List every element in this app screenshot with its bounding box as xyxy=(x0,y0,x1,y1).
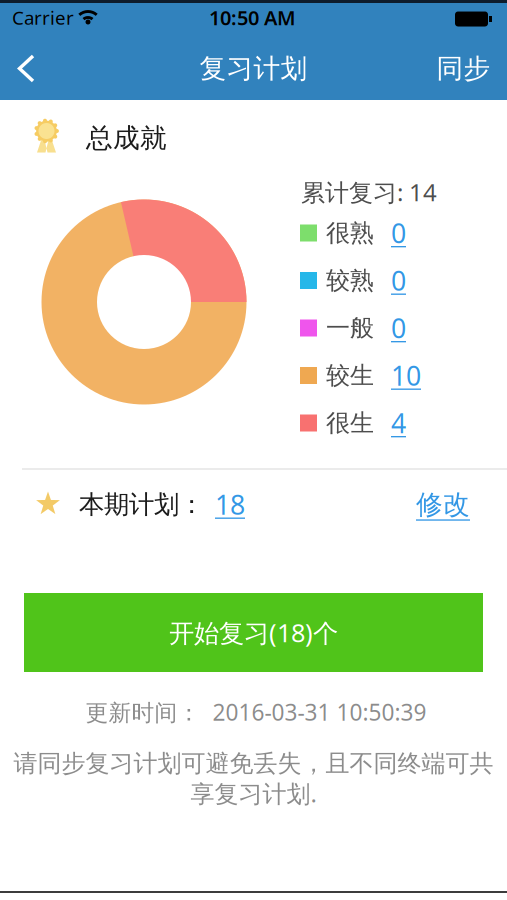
button[interactable]: 同步 xyxy=(436,52,490,85)
staticText: 修改 xyxy=(416,488,470,521)
staticText: 更新时间： 2016-03-31 10:50:39 xyxy=(85,697,426,727)
staticText: 较熟 xyxy=(326,266,374,295)
staticText: 10:50 AM xyxy=(209,4,296,31)
staticText: 很生 xyxy=(326,408,374,438)
button[interactable]: 0 xyxy=(391,310,406,346)
staticText: 一般 xyxy=(326,313,374,343)
staticText: 本期计划： xyxy=(79,489,204,520)
button[interactable]: 18 xyxy=(215,487,245,522)
staticText: 18 xyxy=(215,487,245,522)
button[interactable]: 4 xyxy=(391,405,406,441)
button[interactable]: 0 xyxy=(391,215,406,251)
button[interactable]: 修改 xyxy=(416,488,470,521)
staticText: 总成就 xyxy=(86,122,167,154)
staticText: 开始复习(18)个 xyxy=(169,616,338,649)
staticText: 0 xyxy=(391,215,406,251)
staticText: 较生 xyxy=(326,361,374,390)
staticText: 同步 xyxy=(436,52,490,85)
button[interactable]: 10 xyxy=(391,358,421,393)
staticText: 0 xyxy=(391,310,406,346)
button[interactable]: 0 xyxy=(391,263,406,298)
staticText: 很熟 xyxy=(326,218,374,248)
staticText: 复习计划 xyxy=(199,52,307,85)
staticText: 累计复习: 14 xyxy=(301,176,437,208)
staticText: 0 xyxy=(391,263,406,298)
button[interactable]: Back xyxy=(10,50,44,87)
staticText: 请同步复习计划可避免丢失，且不同终端可共 xyxy=(13,749,493,778)
staticText: 10 xyxy=(391,358,421,393)
staticText: 享复习计划. xyxy=(190,777,316,809)
staticText: 4 xyxy=(391,405,406,441)
staticText: Carrier xyxy=(12,5,74,30)
button[interactable]: 开始复习(18)个 xyxy=(24,593,483,672)
